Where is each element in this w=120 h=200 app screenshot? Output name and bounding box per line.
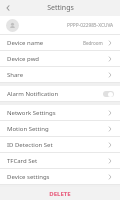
button[interactable]: Back — [0, 0, 16, 16]
button[interactable]: Share — [0, 67, 120, 82]
staticText: DELETE — [49, 190, 71, 198]
staticText: Motion Setting — [7, 125, 49, 133]
button[interactable]: TFCard Set — [0, 153, 120, 168]
staticText: Share — [7, 71, 24, 79]
staticText: TFCard Set — [7, 157, 38, 165]
button[interactable]: PPPP-022985-XCUVA — [0, 16, 120, 34]
staticText: Alarm Notification — [7, 90, 59, 98]
staticText: Device pwd — [7, 55, 40, 63]
staticText: Device name — [7, 39, 44, 47]
staticText: PPPP-022985-XCUVA — [67, 22, 114, 29]
button[interactable]: Device settings — [0, 169, 120, 184]
button[interactable]: Motion Setting — [0, 121, 120, 136]
staticText: Bedroom — [83, 40, 103, 46]
staticText: Device settings — [7, 173, 50, 181]
button[interactable]: Alarm Notification — [0, 86, 120, 101]
staticText: ID Detection Set — [7, 141, 53, 149]
button[interactable]: Network Settings — [0, 105, 120, 120]
button[interactable]: Device pwd — [0, 51, 120, 66]
staticText: Network Settings — [7, 109, 56, 117]
button[interactable]: DELETE — [0, 187, 120, 200]
button[interactable]: Device name — [0, 35, 120, 50]
button[interactable]: ID Detection Set — [0, 137, 120, 152]
staticText: Settings — [47, 3, 74, 13]
